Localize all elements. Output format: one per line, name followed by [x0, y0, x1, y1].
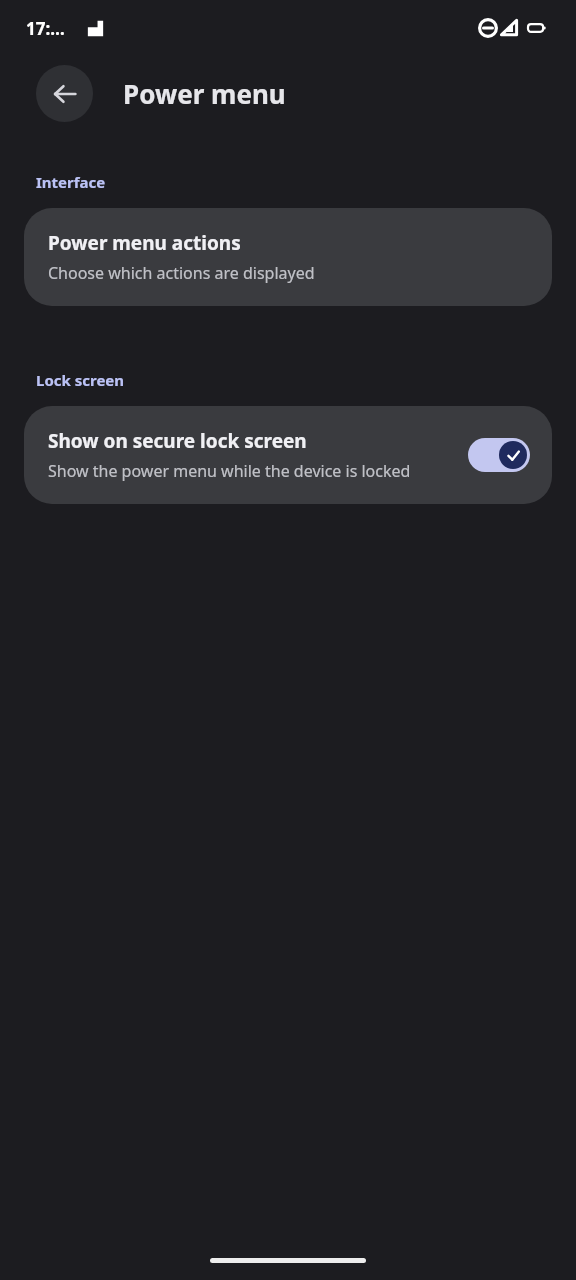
staticText: Show the power menu while the device is … — [48, 460, 411, 482]
staticText: Interface — [36, 172, 106, 192]
button[interactable]: Back — [36, 65, 93, 122]
staticText: Power menu actions — [48, 230, 241, 256]
button[interactable]: Power menu actions — [24, 208, 552, 306]
button[interactable]: Show on secure lock screen toggle — [468, 438, 530, 472]
staticText: Choose which actions are displayed — [48, 262, 315, 284]
staticText: Show on secure lock screen — [48, 428, 307, 454]
staticText: Power menu — [123, 76, 286, 111]
staticText: Lock screen — [36, 370, 125, 390]
button[interactable]: Show on secure lock screen — [24, 406, 552, 504]
staticText: 17:… — [26, 17, 65, 40]
